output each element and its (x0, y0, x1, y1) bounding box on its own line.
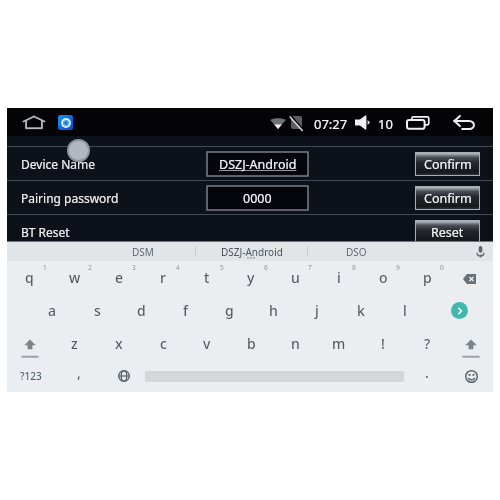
staticText: g (225, 301, 234, 320)
button[interactable]: h (251, 294, 295, 327)
staticText: n (291, 334, 300, 353)
button[interactable]: q (7, 261, 52, 294)
staticText: 10 (378, 115, 393, 133)
button[interactable]: i (317, 261, 361, 294)
button[interactable]: ?123 (7, 360, 55, 392)
staticText: p (423, 268, 432, 287)
staticText: DSM (132, 245, 154, 259)
button[interactable]: . (404, 360, 450, 392)
button[interactable]: Pairing password (7, 181, 493, 214)
staticText: 5 (220, 263, 224, 272)
staticText: c (160, 334, 167, 353)
staticText: 2 (88, 263, 92, 272)
staticText: ?123 (20, 369, 42, 383)
button[interactable]: e (97, 261, 141, 294)
button[interactable]: b (229, 327, 273, 360)
staticText: . (425, 363, 429, 382)
staticText: Confirm (424, 190, 472, 207)
staticText: r (160, 268, 166, 287)
button[interactable]: Reset (416, 221, 479, 243)
staticText: z (71, 334, 78, 353)
staticText: DSO (346, 245, 367, 259)
button[interactable]: w (52, 261, 97, 294)
staticText: a (48, 301, 57, 320)
staticText: 7 (308, 263, 312, 272)
staticText: 4 (176, 263, 180, 272)
button[interactable]: Voice input (476, 246, 485, 258)
staticText: s (94, 301, 101, 320)
staticText: 6 (264, 263, 268, 272)
button[interactable]: v (185, 327, 229, 360)
staticText: ! (381, 334, 385, 353)
button[interactable]: DSO (308, 242, 405, 261)
staticText: i (337, 268, 341, 287)
staticText: BT Reset (21, 224, 70, 240)
button[interactable]: Enter (427, 294, 493, 327)
button[interactable]: Confirm (416, 187, 479, 209)
staticText: q (25, 268, 34, 287)
staticText: f (183, 301, 188, 320)
button[interactable]: Shift (7, 327, 52, 360)
button[interactable]: , (55, 360, 103, 392)
button[interactable]: ? (405, 327, 449, 360)
button[interactable]: Home (23, 116, 45, 129)
staticText: h (269, 301, 278, 320)
staticText: 0000 (243, 190, 272, 207)
button[interactable]: j (295, 294, 339, 327)
button[interactable]: a (30, 294, 75, 327)
button[interactable]: u (273, 261, 317, 294)
staticText: DSZJ-Android (219, 156, 297, 173)
button[interactable]: m (317, 327, 361, 360)
button[interactable]: y (229, 261, 273, 294)
button[interactable]: Backspace (449, 261, 493, 294)
staticText: x (115, 334, 123, 353)
button[interactable]: o (361, 261, 405, 294)
staticText: w (69, 268, 81, 287)
staticText: 9 (396, 263, 400, 272)
button[interactable]: k (339, 294, 383, 327)
button[interactable]: Back (453, 115, 476, 130)
staticText: l (403, 301, 407, 320)
button[interactable]: x (97, 327, 141, 360)
button[interactable]: d (119, 294, 163, 327)
button[interactable]: n (273, 327, 317, 360)
button[interactable]: BT Reset (7, 215, 493, 248)
button[interactable]: ! (361, 327, 405, 360)
button[interactable]: s (75, 294, 119, 327)
staticText: ? (424, 334, 431, 353)
staticText: Reset (431, 224, 464, 241)
staticText: 8 (352, 263, 356, 272)
staticText: u (291, 268, 300, 287)
button[interactable]: t (185, 261, 229, 294)
staticText: e (115, 268, 124, 287)
button[interactable]: p (405, 261, 449, 294)
button[interactable]: DSZJ-Android (207, 152, 308, 176)
button[interactable]: l (383, 294, 427, 327)
button[interactable] (145, 360, 404, 392)
staticText: j (315, 301, 319, 320)
staticText: 07:27 (314, 115, 348, 133)
staticText: y (247, 268, 255, 287)
button[interactable]: Bluetooth settings (58, 115, 73, 130)
button[interactable]: Confirm (416, 153, 479, 175)
button[interactable]: DSZJ-Android (196, 242, 307, 261)
button[interactable]: Emoji (450, 360, 493, 392)
staticText: Confirm (424, 156, 472, 173)
button[interactable]: Device Name (7, 147, 493, 180)
button[interactable]: Shift (449, 327, 493, 360)
button[interactable]: c (141, 327, 185, 360)
button[interactable]: Recent apps (407, 116, 429, 129)
button[interactable]: z (52, 327, 97, 360)
staticText: m (332, 334, 346, 353)
button[interactable]: f (163, 294, 207, 327)
button[interactable]: 0000 (207, 186, 308, 210)
button[interactable]: r (141, 261, 185, 294)
button[interactable]: DSM (90, 242, 195, 261)
button[interactable]: g (207, 294, 251, 327)
staticText: b (247, 334, 256, 353)
button[interactable]: Change keyboard language (103, 360, 145, 392)
staticText: 1 (43, 263, 47, 272)
staticText: Pairing password (21, 190, 119, 206)
staticText: v (203, 334, 211, 353)
staticText: 3 (132, 263, 136, 272)
